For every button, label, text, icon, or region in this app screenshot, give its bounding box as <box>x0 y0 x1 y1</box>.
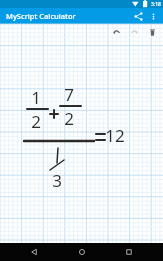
button[interactable]: Clear <box>146 26 159 39</box>
staticText: 12 <box>105 124 125 147</box>
staticText: 2 <box>64 107 74 130</box>
button[interactable]: Share <box>130 8 146 24</box>
button[interactable]: Undo <box>110 26 123 39</box>
staticText: 3:18 <box>151 1 161 8</box>
staticText: MyScript Calculator <box>6 11 76 21</box>
staticText: 3 <box>52 169 62 192</box>
button[interactable]: Home <box>74 244 90 260</box>
button[interactable]: Recents <box>121 244 137 260</box>
staticText: 1 <box>31 86 41 109</box>
staticText: 7 <box>64 83 74 106</box>
button[interactable]: Redo <box>128 26 141 39</box>
button[interactable]: More options <box>146 9 160 23</box>
staticText: 2 <box>31 110 41 133</box>
button[interactable]: Back <box>26 244 42 260</box>
